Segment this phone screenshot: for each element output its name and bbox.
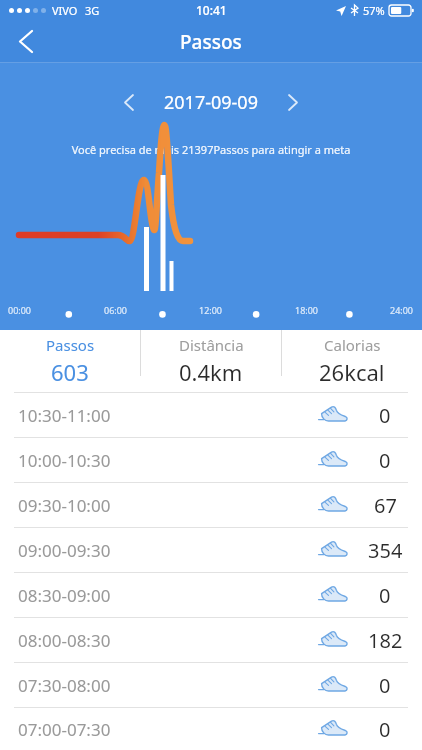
- staticText: 57%: [363, 3, 385, 18]
- staticText: 08:00-08:30: [18, 629, 111, 652]
- staticText: 2017-09-09: [164, 90, 258, 115]
- staticText: Calorias: [324, 335, 381, 355]
- button[interactable]: Distância: [141, 330, 281, 387]
- staticText: 0: [379, 402, 391, 429]
- staticText: 67: [374, 492, 397, 519]
- button[interactable]: Back: [0, 20, 52, 63]
- staticText: 182: [368, 627, 403, 654]
- staticText: 09:30-10:00: [18, 494, 111, 517]
- staticText: 10:30-11:00: [18, 404, 111, 427]
- staticText: Passos: [180, 29, 242, 55]
- staticText: Distância: [179, 335, 244, 355]
- staticText: Passos: [46, 335, 95, 355]
- button[interactable]: 09:00-09:30: [0, 528, 422, 572]
- button[interactable]: 09:30-10:00: [0, 483, 422, 527]
- staticText: 00:00: [8, 304, 32, 316]
- button[interactable]: Calorias: [282, 330, 422, 387]
- staticText: 0.4km: [179, 357, 243, 387]
- button[interactable]: Previous day: [108, 81, 150, 123]
- button[interactable]: 08:30-09:00: [0, 573, 422, 617]
- staticText: 12:00: [199, 304, 223, 316]
- button[interactable]: 07:00-07:30: [0, 708, 422, 750]
- staticText: 0: [379, 716, 391, 743]
- staticText: 0: [379, 447, 391, 474]
- button[interactable]: Next day: [272, 81, 314, 123]
- staticText: VIVO: [52, 3, 78, 18]
- staticText: 26kcal: [319, 357, 385, 387]
- staticText: 10:00-10:30: [18, 449, 111, 472]
- staticText: 0: [379, 672, 391, 699]
- button[interactable]: 08:00-08:30: [0, 618, 422, 662]
- staticText: 24:00: [390, 304, 414, 316]
- button[interactable]: Passos: [0, 330, 140, 387]
- staticText: 3G: [85, 3, 100, 18]
- button[interactable]: 10:30-11:00: [0, 393, 422, 437]
- staticText: 08:30-09:00: [18, 584, 111, 607]
- staticText: 07:30-08:00: [18, 674, 111, 697]
- staticText: 07:00-07:30: [18, 718, 111, 741]
- staticText: 10:41: [196, 2, 227, 18]
- staticText: 18:00: [295, 304, 319, 316]
- button[interactable]: 10:00-10:30: [0, 438, 422, 482]
- staticText: 06:00: [104, 304, 128, 316]
- staticText: 354: [368, 537, 403, 564]
- button[interactable]: 07:30-08:00: [0, 663, 422, 707]
- staticText: 0: [379, 582, 391, 609]
- staticText: 09:00-09:30: [18, 539, 111, 562]
- staticText: Você precisa de mais 21397Passos para at…: [0, 142, 422, 157]
- staticText: 603: [51, 357, 89, 387]
